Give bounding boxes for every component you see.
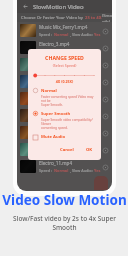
staticText: Electro_11.mp4 (39, 160, 73, 166)
staticText: , Slow Audio: (69, 168, 94, 173)
button[interactable]: Normal (33, 88, 96, 107)
staticText: Speed : (39, 32, 54, 37)
button[interactable]: Travel_Vlog.mp4 (17, 107, 112, 124)
button[interactable]: OK (83, 146, 96, 154)
button[interactable]: Add video (94, 176, 108, 190)
staticText: Electro_3.mp4 (39, 41, 70, 47)
staticText: Electro_7.mp4 (39, 58, 70, 64)
staticText: Normal (54, 66, 69, 71)
button[interactable]: Super Smooth (33, 111, 96, 130)
button[interactable]: City_Walk.mp4 (17, 124, 112, 141)
button[interactable]: Electro_7.mp4 (17, 56, 112, 73)
button[interactable]: Electro_11.mp4 (17, 158, 112, 175)
staticText: CHANGE SPEED (33, 54, 96, 61)
staticText: Travel_Vlog.mp4 (39, 109, 75, 115)
button[interactable]: More options (101, 146, 109, 154)
button[interactable]: Sunset_View.mp4 (17, 90, 112, 107)
staticText: Speed : (39, 66, 54, 71)
staticText: OK (86, 147, 93, 153)
button[interactable]: Music Mix_Ferry1.mp4 (17, 22, 112, 39)
staticText: Super Smooth video compatibility/Slower … (41, 118, 96, 130)
button[interactable]: More options (101, 61, 109, 69)
button[interactable]: Electro_3.mp4 (17, 39, 112, 56)
staticText: City_Walk.mp4 (39, 126, 71, 132)
staticText: Faster converting speed Video may not be… (41, 95, 96, 107)
button[interactable]: Back (21, 2, 30, 11)
staticText: Mute Audio (41, 134, 66, 140)
button[interactable]: Cancel (57, 146, 77, 154)
staticText: Normal (54, 117, 69, 122)
staticText: Normal (41, 88, 57, 94)
staticText: 4X (0.25X) (33, 79, 96, 84)
staticText: 2S to 4X (85, 15, 102, 21)
staticText: Speed : (39, 168, 54, 173)
staticText: Sunset_View.mp4 (39, 92, 77, 98)
staticText: (Smooth) (102, 13, 112, 22)
staticText: Normal (54, 32, 69, 37)
staticText: Cancel (60, 147, 74, 153)
staticText: , Slow Audio: (69, 32, 94, 37)
staticText: Choose Or Faster Your Video by (21, 15, 85, 21)
staticText: Beach_Morning.mp4 (39, 143, 84, 149)
staticText: Yes (94, 32, 101, 37)
staticText: Super Smooth (41, 111, 71, 117)
staticText: , Slow Audio: (69, 66, 94, 71)
staticText: Yes (94, 168, 101, 173)
button[interactable]: More options (101, 27, 109, 35)
button[interactable]: Mute Audio (33, 134, 66, 140)
staticText: Normal (54, 134, 69, 139)
staticText: Speed : (39, 100, 54, 105)
staticText: Nature_Clip.mp4 (39, 75, 76, 81)
button[interactable]: More options (101, 44, 109, 52)
button[interactable]: More options (101, 95, 109, 103)
staticText: (Select Speed) (33, 63, 96, 68)
staticText: , Slow Audio: (69, 117, 94, 122)
staticText: Normal (54, 100, 69, 105)
button[interactable]: Speed slider (33, 72, 96, 79)
button[interactable]: More options (101, 78, 109, 86)
staticText: Speed : (39, 134, 54, 139)
staticText: SlowMotion Video (33, 3, 84, 11)
button[interactable]: Beach_Morning.mp4 (17, 141, 112, 158)
staticText: Normal (54, 168, 69, 173)
staticText: Speed : (39, 117, 54, 122)
button[interactable]: More options (101, 163, 109, 171)
staticText: Video Slow Motion (2, 191, 127, 209)
staticText: Music Mix_Ferry1.mp4 (39, 24, 88, 30)
button[interactable]: Nature_Clip.mp4 (17, 73, 112, 90)
staticText: Yes (94, 49, 101, 54)
staticText: Slow/Fast video by 2s to 4x Super Smooth (13, 214, 116, 232)
button[interactable]: More options (101, 112, 109, 120)
button[interactable]: More options (101, 129, 109, 137)
